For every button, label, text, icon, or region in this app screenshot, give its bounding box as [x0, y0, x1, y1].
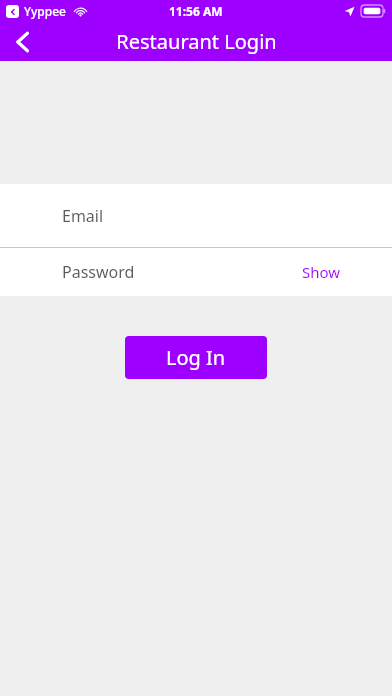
button[interactable]: Password: [0, 248, 392, 296]
staticText: Email: [62, 205, 104, 227]
staticText: 11:56 AM: [169, 3, 223, 19]
button[interactable]: Show: [298, 258, 345, 286]
staticText: Password: [62, 261, 135, 283]
staticText: Show: [302, 262, 341, 282]
button[interactable]: Log In: [125, 336, 267, 379]
staticText: Log In: [166, 344, 226, 371]
button[interactable]: Back: [0, 22, 44, 61]
staticText: Yyppee: [24, 3, 67, 19]
staticText: Restaurant Login: [116, 28, 277, 55]
button[interactable]: Email: [0, 184, 392, 247]
